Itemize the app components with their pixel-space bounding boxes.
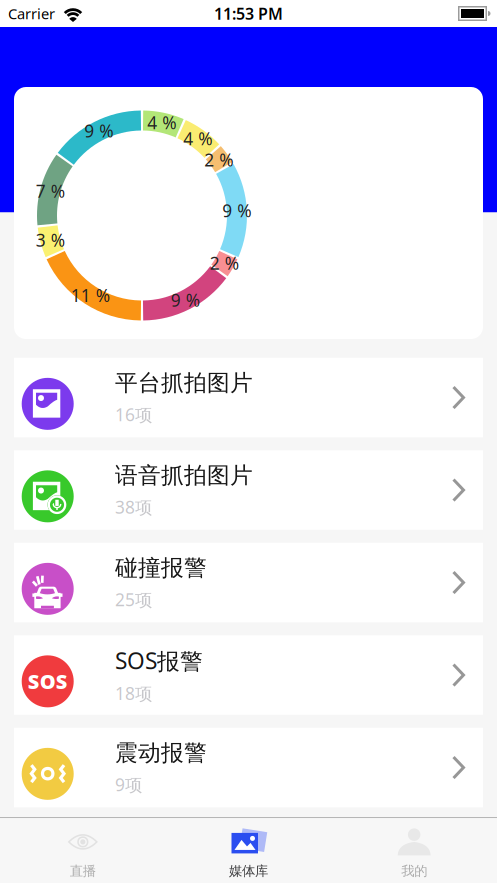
button[interactable]: 我的 bbox=[331, 818, 497, 883]
staticText: 9 % bbox=[84, 119, 113, 142]
staticText: Carrier bbox=[8, 4, 55, 23]
staticText: 4 % bbox=[147, 111, 176, 134]
staticText: 2 % bbox=[210, 251, 239, 274]
staticText: 4 % bbox=[183, 127, 212, 150]
staticText: 25项 bbox=[115, 588, 152, 611]
button[interactable]: 直播 bbox=[0, 818, 166, 883]
button[interactable]: SOS bbox=[14, 635, 483, 715]
button[interactable]: 碰撞报警 bbox=[14, 543, 483, 622]
staticText: 38项 bbox=[115, 495, 152, 518]
staticText: 直播 bbox=[70, 863, 96, 879]
staticText: 我的 bbox=[401, 863, 427, 879]
staticText: 11 % bbox=[71, 284, 110, 307]
button[interactable]: 媒体库 bbox=[166, 818, 331, 883]
staticText: 平台抓拍图片 bbox=[115, 369, 253, 397]
staticText: 9 % bbox=[222, 199, 251, 222]
button[interactable]: 平台抓拍图片 bbox=[14, 358, 483, 437]
staticText: 媒体库 bbox=[229, 863, 268, 879]
staticText: 9 % bbox=[171, 289, 200, 312]
staticText: SOS bbox=[28, 668, 68, 695]
staticText: SOS报警 bbox=[115, 645, 203, 676]
staticText: 语音抓拍图片 bbox=[115, 462, 253, 489]
button[interactable]: 震动报警 bbox=[14, 728, 483, 807]
staticText: 11:53 PM bbox=[214, 3, 283, 24]
button[interactable]: 语音抓拍图片 bbox=[14, 450, 483, 530]
staticText: 18项 bbox=[115, 682, 152, 705]
staticText: 7 % bbox=[36, 179, 65, 202]
staticText: 9项 bbox=[115, 773, 142, 796]
staticText: 碰撞报警 bbox=[115, 554, 207, 582]
staticText: 震动报警 bbox=[115, 739, 207, 767]
staticText: 3 % bbox=[36, 229, 65, 252]
staticText: 16项 bbox=[115, 403, 152, 426]
staticText: 2 % bbox=[204, 148, 233, 171]
